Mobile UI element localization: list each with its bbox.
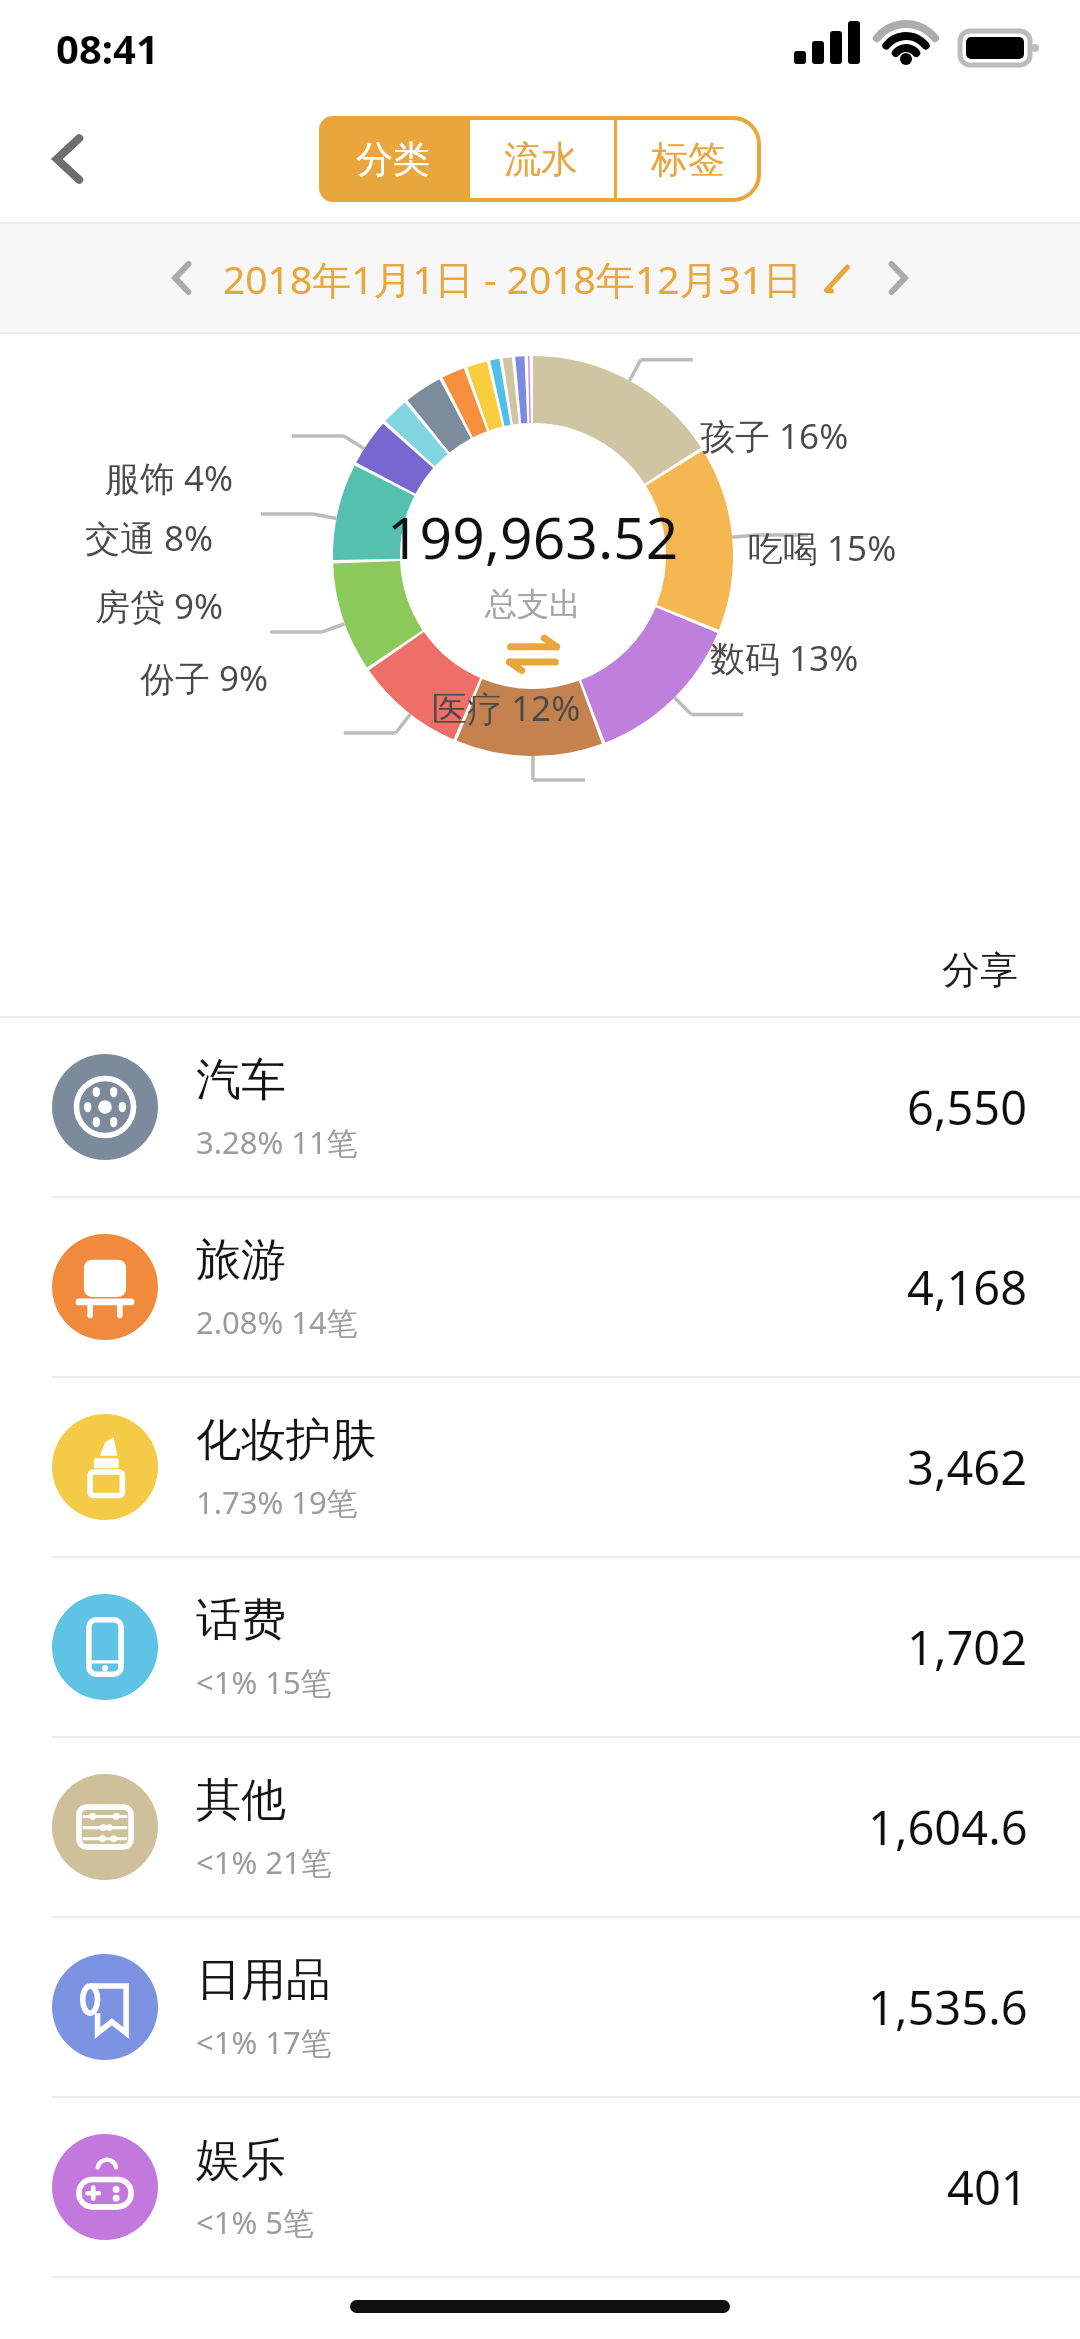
- staticText: 医疗 12%: [432, 684, 581, 732]
- staticText: <1% 21笔: [196, 1841, 332, 1883]
- staticText: 3.28% 11笔: [196, 1121, 358, 1163]
- button[interactable]: 娱乐: [0, 2098, 1080, 2276]
- staticText: 1,702: [907, 1615, 1028, 1679]
- staticText: <1% 5笔: [196, 2201, 315, 2243]
- staticText: 化妆护肤: [196, 1412, 376, 1469]
- button[interactable]: Previous period: [145, 241, 219, 315]
- staticText: <1% 15笔: [196, 1661, 332, 1703]
- staticText: 汽车: [196, 1052, 286, 1109]
- staticText: 交通 8%: [85, 514, 214, 562]
- staticText: 1,535.6: [868, 1975, 1028, 2039]
- staticText: 其他: [196, 1772, 286, 1829]
- button[interactable]: Switch direction: [505, 636, 561, 672]
- staticText: 3,462: [907, 1435, 1028, 1499]
- button[interactable]: 汽车: [0, 1018, 1080, 1196]
- staticText: 401: [947, 2155, 1028, 2219]
- button[interactable]: 话费: [0, 1558, 1080, 1736]
- button[interactable]: Next period: [861, 241, 935, 315]
- staticText: 份子 9%: [140, 654, 269, 702]
- button[interactable]: 流水: [467, 116, 614, 202]
- button[interactable]: Back: [16, 107, 120, 211]
- button[interactable]: 标签: [614, 116, 761, 202]
- staticText: 话费: [196, 1592, 286, 1649]
- button[interactable]: 化妆护肤: [0, 1378, 1080, 1556]
- button[interactable]: 分类: [319, 116, 467, 202]
- button[interactable]: 分享: [930, 934, 1030, 1006]
- staticText: 1,604.6: [868, 1795, 1028, 1859]
- staticText: 4,168: [907, 1255, 1028, 1319]
- button[interactable]: 2018年1月1日 - 2018年12月31日: [219, 252, 861, 305]
- staticText: 日用品: [196, 1952, 331, 2009]
- staticText: 孩子 16%: [700, 412, 849, 460]
- staticText: 旅游: [196, 1232, 286, 1289]
- staticText: 总支出: [485, 584, 581, 624]
- staticText: 房贷 9%: [95, 582, 224, 630]
- staticText: 2.08% 14笔: [196, 1301, 358, 1343]
- staticText: 数码 13%: [710, 634, 859, 682]
- staticText: 6,550: [907, 1075, 1028, 1139]
- staticText: 流水: [504, 136, 578, 183]
- button[interactable]: 日用品: [0, 1918, 1080, 2096]
- staticText: 吃喝 15%: [748, 524, 897, 572]
- staticText: 分享: [942, 946, 1018, 994]
- button[interactable]: 旅游: [0, 1198, 1080, 1376]
- staticText: 服饰 4%: [105, 454, 234, 502]
- button[interactable]: 其他: [0, 1738, 1080, 1916]
- staticText: 08:41: [56, 21, 159, 75]
- staticText: 199,963.52: [387, 498, 679, 576]
- staticText: 2018年1月1日 - 2018年12月31日: [223, 252, 803, 305]
- staticText: 1.73% 19笔: [196, 1481, 358, 1523]
- staticText: 娱乐: [196, 2132, 286, 2189]
- staticText: 分类: [356, 136, 430, 183]
- staticText: 标签: [651, 136, 725, 183]
- staticText: <1% 17笔: [196, 2021, 332, 2063]
